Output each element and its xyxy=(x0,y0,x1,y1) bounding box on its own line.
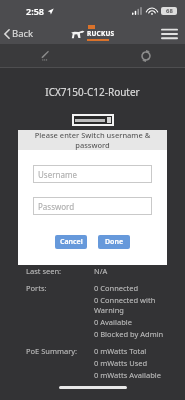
staticText: Back xyxy=(12,27,34,40)
staticText: Please enter Switch username & password xyxy=(18,130,167,150)
staticText: Ports: xyxy=(26,283,94,293)
staticText: Username xyxy=(38,169,77,180)
staticText: 2:58 xyxy=(26,5,44,17)
button[interactable]: Back xyxy=(0,25,40,42)
staticText: 0 mWatts Used xyxy=(94,358,148,368)
staticText: 0 mWatts Total xyxy=(94,346,147,356)
staticText: ICX7150-C12-Router xyxy=(0,85,185,99)
staticText: 0 Connected xyxy=(94,283,139,293)
staticText: 0 Connected with Warning xyxy=(94,295,177,315)
staticText: PoE Summary: xyxy=(26,346,94,356)
button[interactable]: Password xyxy=(33,197,152,215)
staticText: 0 Blocked by Admin xyxy=(94,329,164,339)
staticText: 0 mWatts Available xyxy=(94,370,161,380)
staticText: Last seen: xyxy=(26,266,94,276)
button[interactable]: Cancel xyxy=(55,235,87,249)
button[interactable]: Menu xyxy=(154,23,185,43)
staticText: Cancel xyxy=(60,237,83,247)
staticText: N/A xyxy=(94,266,108,276)
button[interactable]: Username xyxy=(33,165,152,183)
staticText: 0 Available xyxy=(94,317,132,327)
button[interactable]: Refresh xyxy=(137,47,155,65)
staticText: 68 xyxy=(166,7,173,15)
button[interactable]: Edit xyxy=(34,46,53,65)
staticText: RUCKUS xyxy=(87,29,115,38)
button[interactable]: Done xyxy=(98,235,130,249)
staticText: Password xyxy=(38,201,75,212)
staticText: Done xyxy=(105,237,124,247)
